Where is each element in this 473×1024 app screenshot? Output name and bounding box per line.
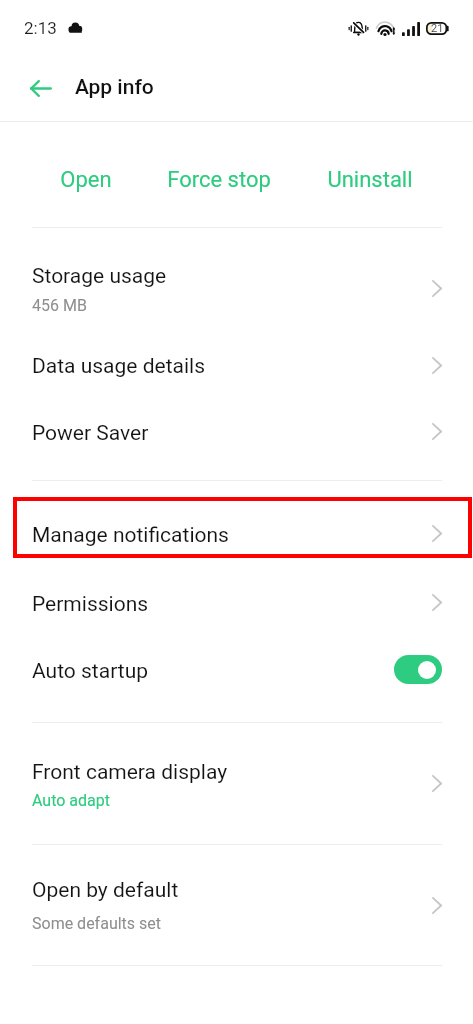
button[interactable]: Back — [19, 67, 62, 110]
staticText: 456 MB — [32, 296, 87, 315]
staticText: Power Saver — [32, 421, 149, 446]
button[interactable]: Front camera display — [0, 736, 473, 825]
button[interactable]: Uninstall — [327, 122, 413, 227]
button[interactable]: Open — [60, 122, 112, 227]
staticText: Permissions — [32, 592, 149, 617]
staticText: Some defaults set — [32, 914, 162, 933]
button[interactable]: Data usage details — [0, 332, 473, 398]
staticText: Open — [60, 167, 112, 193]
button[interactable]: Auto startup toggle — [394, 655, 442, 684]
staticText: Data usage details — [32, 354, 206, 379]
button[interactable]: Storage usage — [0, 244, 473, 332]
button[interactable]: Open by default — [0, 857, 473, 945]
staticText: Auto startup — [32, 659, 149, 684]
staticText: App info — [75, 75, 154, 100]
staticText: Open by default — [32, 878, 179, 903]
staticText: Force stop — [167, 167, 271, 193]
button[interactable]: Permissions — [0, 567, 473, 635]
staticText: 2:13 — [24, 18, 57, 38]
button[interactable]: Auto startup — [0, 635, 473, 703]
staticText: Auto adapt — [32, 791, 110, 810]
staticText: Uninstall — [327, 167, 413, 193]
staticText: Manage notifications — [32, 523, 229, 548]
button[interactable]: Power Saver — [0, 398, 473, 464]
staticText: Storage usage — [32, 264, 167, 289]
button[interactable]: Manage notifications — [0, 498, 473, 567]
staticText: 21 — [431, 22, 444, 35]
button[interactable]: Force stop — [167, 122, 271, 227]
staticText: Front camera display — [32, 760, 228, 785]
